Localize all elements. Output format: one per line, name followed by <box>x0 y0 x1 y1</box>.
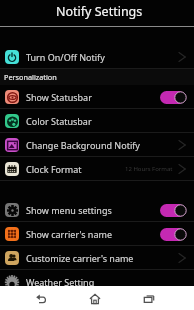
staticText: Show Statusbar <box>26 91 92 103</box>
staticText: Show carrier's name <box>26 228 112 240</box>
button[interactable]: Show Statusbar <box>0 85 194 109</box>
button[interactable] <box>160 228 187 241</box>
staticText: Show menu settings <box>26 204 112 216</box>
button[interactable]: Turn On/Off Notify <box>0 45 194 69</box>
button[interactable] <box>160 91 187 104</box>
staticText: Customize carrier's name <box>26 252 134 264</box>
staticText: Change Background Notify <box>26 139 140 151</box>
button[interactable]: Show carrier's name <box>0 222 194 246</box>
button[interactable]: Recents <box>139 289 158 308</box>
staticText: Turn On/Off Notify <box>26 51 105 63</box>
button[interactable] <box>160 204 187 217</box>
staticText: Weather Setting <box>26 276 95 288</box>
button[interactable]: Show menu settings <box>0 198 194 222</box>
button[interactable]: Home <box>85 289 104 308</box>
staticText: Personalization <box>4 72 57 82</box>
button[interactable]: Clock Format <box>0 157 194 181</box>
button[interactable]: Back <box>31 289 50 308</box>
staticText: Clock Format <box>26 163 82 175</box>
button[interactable]: Color Statusbar <box>0 109 194 133</box>
button[interactable]: Weather Setting <box>0 270 194 294</box>
staticText: 12 Hours Format <box>125 165 173 173</box>
staticText: Notify Settings <box>56 3 143 20</box>
staticText: Color Statusbar <box>26 115 92 127</box>
button[interactable]: Change Background Notify <box>0 133 194 157</box>
button[interactable]: Customize carrier's name <box>0 246 194 270</box>
